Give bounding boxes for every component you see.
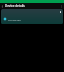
button[interactable]: Back	[0, 4, 5, 9]
button[interactable]: Options	[60, 11, 61, 13]
button[interactable]: Options	[1, 9, 63, 24]
staticText: Device details	[5, 4, 25, 8]
staticText: Connected	[8, 18, 21, 21]
button[interactable]: More options	[59, 4, 64, 9]
